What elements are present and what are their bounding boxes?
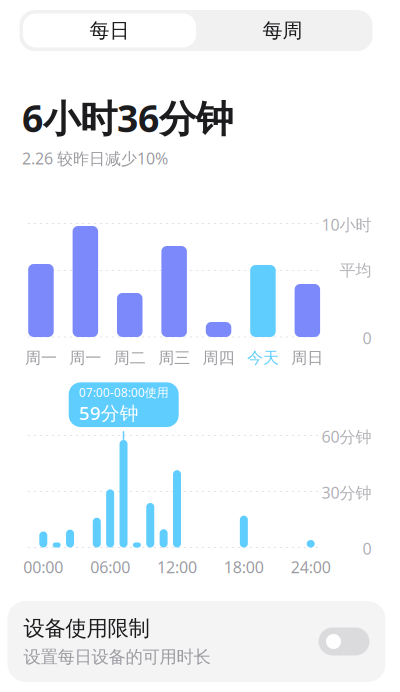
staticText: 今天: [247, 348, 279, 368]
staticText: 周一: [69, 348, 101, 368]
staticText: 平均: [339, 261, 371, 280]
staticText: 周四: [202, 348, 234, 368]
staticText: 2.26 较昨日减少10%: [22, 148, 168, 169]
staticText: 周二: [114, 348, 146, 368]
button[interactable]: 每日: [23, 13, 196, 47]
staticText: 24:00: [291, 556, 331, 578]
staticText: 每周: [262, 18, 302, 43]
staticText: 6小时36分钟: [22, 93, 233, 143]
staticText: 18:00: [224, 556, 264, 578]
staticText: 59分钟: [79, 400, 139, 425]
staticText: 12:00: [157, 556, 197, 578]
button[interactable]: 每周: [196, 13, 369, 47]
staticText: 30分钟: [321, 482, 371, 503]
staticText: 0: [362, 327, 371, 349]
staticText: 周三: [158, 348, 190, 368]
staticText: 10小时: [321, 214, 371, 235]
staticText: 60分钟: [321, 426, 371, 447]
staticText: 设备使用限制: [23, 615, 149, 641]
staticText: 06:00: [90, 556, 130, 578]
staticText: 周一: [25, 348, 57, 368]
staticText: 每日: [89, 18, 129, 43]
staticText: 0: [362, 538, 371, 559]
button[interactable]: 设备使用限制: [7, 601, 385, 682]
staticText: 设置每日设备的可用时长: [23, 646, 210, 668]
staticText: 00:00: [23, 556, 63, 578]
staticText: 07:00-08:00使用: [79, 384, 169, 400]
staticText: 周日: [291, 348, 323, 368]
